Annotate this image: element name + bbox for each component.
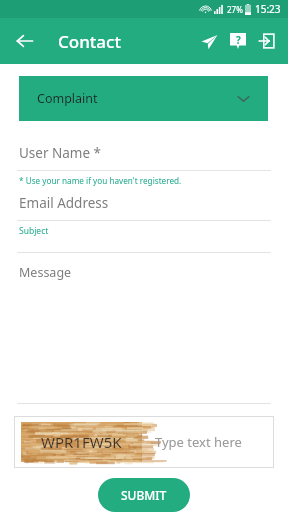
staticText: Message <box>19 264 72 281</box>
staticText: Subject <box>19 225 49 237</box>
button[interactable]: SUBMIT <box>98 478 190 512</box>
staticText: ? <box>236 33 241 47</box>
staticText: * Use your name if you haven't registere… <box>19 175 182 186</box>
staticText: User Name * <box>19 144 102 162</box>
button[interactable]: Back <box>11 27 39 55</box>
button[interactable]: Login <box>254 28 280 54</box>
staticText: Email Address <box>19 194 109 212</box>
staticText: 27% <box>227 4 243 15</box>
staticText: Complaint <box>37 90 98 107</box>
button[interactable]: WPR1FW5K <box>14 416 274 468</box>
staticText: WPR1FW5K <box>41 432 122 452</box>
staticText: Type text here <box>155 433 242 451</box>
staticText: 15:23 <box>255 2 281 16</box>
button[interactable]: Send <box>196 28 222 54</box>
button[interactable]: Complaint <box>19 76 268 121</box>
staticText: SUBMIT <box>121 487 167 503</box>
button[interactable]: Help <box>225 28 251 54</box>
staticText: Contact <box>58 30 121 53</box>
